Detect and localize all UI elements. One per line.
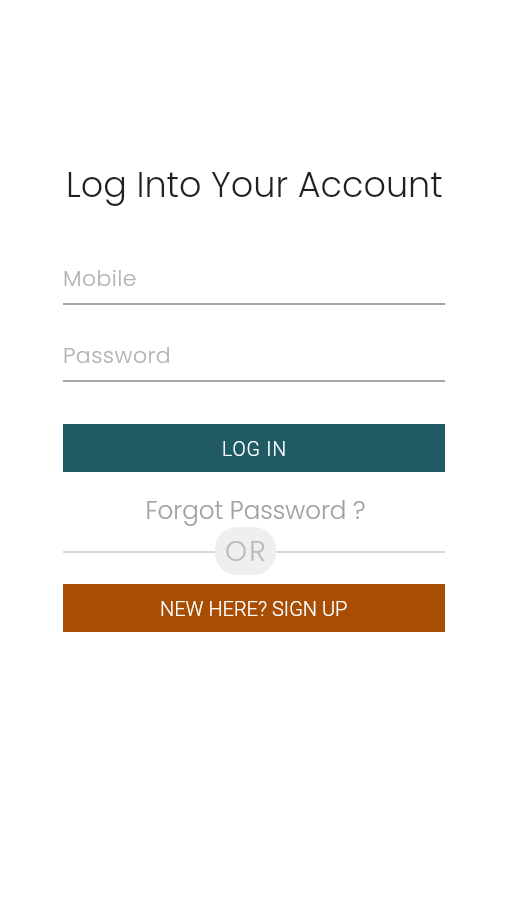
staticText: Mobile xyxy=(63,263,137,294)
button[interactable]: Mobile xyxy=(63,258,445,308)
staticText: Forgot Password ? xyxy=(145,493,366,527)
staticText: Password xyxy=(63,340,172,371)
button[interactable]: Password xyxy=(63,335,445,385)
button[interactable]: LOG IN xyxy=(63,424,445,472)
staticText: LOG IN xyxy=(222,438,287,461)
staticText: NEW HERE? SIGN UP xyxy=(160,597,348,620)
button[interactable]: Forgot Password ? xyxy=(130,490,380,530)
staticText: Log Into Your Account xyxy=(66,160,443,209)
button[interactable]: NEW HERE? SIGN UP xyxy=(63,584,445,632)
staticText: OR xyxy=(225,532,268,571)
